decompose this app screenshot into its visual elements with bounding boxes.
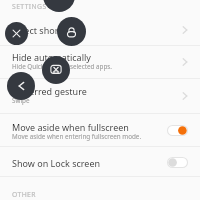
- button[interactable]: Switch off: [167, 155, 191, 169]
- button[interactable]: Hide automatically: [0, 46, 200, 78]
- button[interactable]: Preferred gesture: [0, 79, 200, 113]
- staticText: Show on Lock screen: [12, 157, 101, 169]
- button[interactable]: Minimize: [43, 0, 75, 12]
- button[interactable]: Switch on: [167, 123, 191, 137]
- staticText: Move aside when fullscreen: [12, 121, 129, 133]
- button[interactable]: Move aside when fullscreen: [0, 114, 200, 146]
- button[interactable]: Back: [7, 72, 35, 100]
- staticText: Swipe: [12, 96, 30, 105]
- button[interactable]: Lock: [57, 17, 86, 46]
- button[interactable]: Select shortcuts: [0, 15, 200, 45]
- staticText: SETTINGS: [12, 2, 47, 11]
- staticText: OTHER: [12, 190, 36, 199]
- staticText: Move aside when entering fullscreen mode…: [12, 132, 142, 141]
- staticText: Hide Quick Tools in selected apps.: [12, 62, 113, 71]
- staticText: Select shortcuts: [12, 24, 80, 36]
- staticText: Preferred gesture: [12, 85, 87, 97]
- button[interactable]: Screenshot: [42, 56, 70, 84]
- staticText: Hide automatically: [12, 51, 91, 63]
- button[interactable]: Close: [5, 22, 28, 45]
- button[interactable]: Show on Lock screen: [0, 147, 200, 176]
